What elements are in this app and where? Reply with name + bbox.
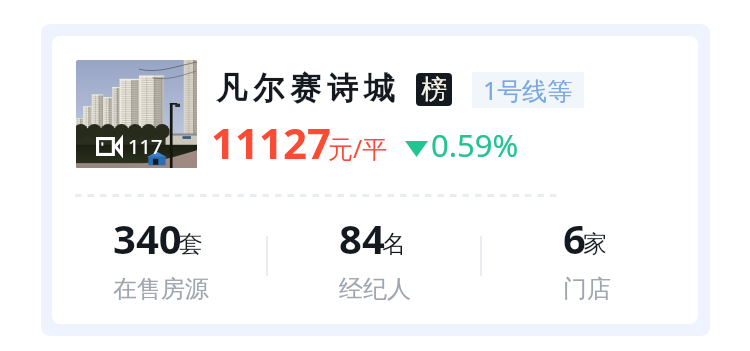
staticText: 名 [382,229,406,259]
staticText: 0.59% [431,124,519,166]
staticText: 340 [113,211,182,265]
staticText: 家 [583,229,607,259]
staticText: 11127 [211,114,332,171]
button[interactable]: 凡尔赛诗城 小区照片，117 个视频 [52,36,698,324]
staticText: 1号线等 [483,73,573,107]
staticText: 门店 [563,274,611,304]
staticText: 榜 [421,73,447,106]
button[interactable]: 1号线等 [472,72,584,108]
button[interactable]: 6 [563,211,698,306]
button[interactable]: 84 [339,211,489,306]
staticText: 元/平 [328,131,388,165]
other: Video [96,137,123,156]
staticText: 117 [128,133,163,160]
staticText: 6 [563,211,586,265]
staticText: 84 [339,211,385,265]
staticText: 套 [179,229,203,259]
button[interactable]: 榜 [416,73,452,106]
staticText: 在售房源 [113,274,209,304]
staticText: 经纪人 [339,274,411,304]
button[interactable]: 340 [113,211,263,306]
staticText: 凡尔赛诗城 [213,69,398,108]
button[interactable]: 凡尔赛诗城 小区照片，117 个视频 [76,60,197,168]
